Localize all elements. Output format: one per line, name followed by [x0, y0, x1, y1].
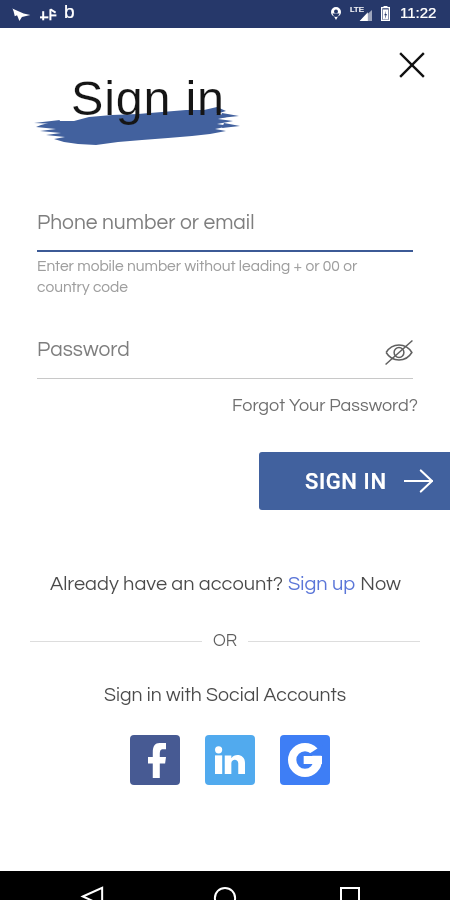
- staticText: Sign in with Social Accounts: [104, 685, 347, 705]
- button[interactable]: SIGN IN: [259, 452, 450, 510]
- staticText: Enter mobile number without leading + or…: [37, 258, 358, 295]
- staticText: Phone number or email: [37, 212, 255, 234]
- staticText: Sign in: [71, 71, 225, 125]
- staticText: Already have an account?: [50, 574, 288, 595]
- button[interactable]: Show password: [377, 330, 421, 374]
- staticText: SIGN IN: [305, 469, 387, 495]
- staticText: OR: [213, 632, 238, 650]
- staticText: Now: [356, 574, 401, 595]
- button[interactable]: Recents: [328, 871, 372, 900]
- button[interactable]: Home: [203, 871, 247, 900]
- staticText: Password: [37, 339, 130, 361]
- button[interactable]: Close: [390, 43, 434, 87]
- button[interactable]: Sign up: [288, 574, 356, 595]
- button[interactable]: Google: [280, 735, 330, 785]
- staticText: 11:22: [400, 4, 437, 21]
- button[interactable]: Facebook: [130, 735, 180, 785]
- button[interactable]: Forgot Your Password?: [232, 396, 418, 415]
- button[interactable]: Back: [74, 871, 118, 900]
- staticText: b: [64, 1, 75, 22]
- staticText: LTE: [350, 5, 365, 14]
- button[interactable]: LinkedIn: [205, 735, 255, 785]
